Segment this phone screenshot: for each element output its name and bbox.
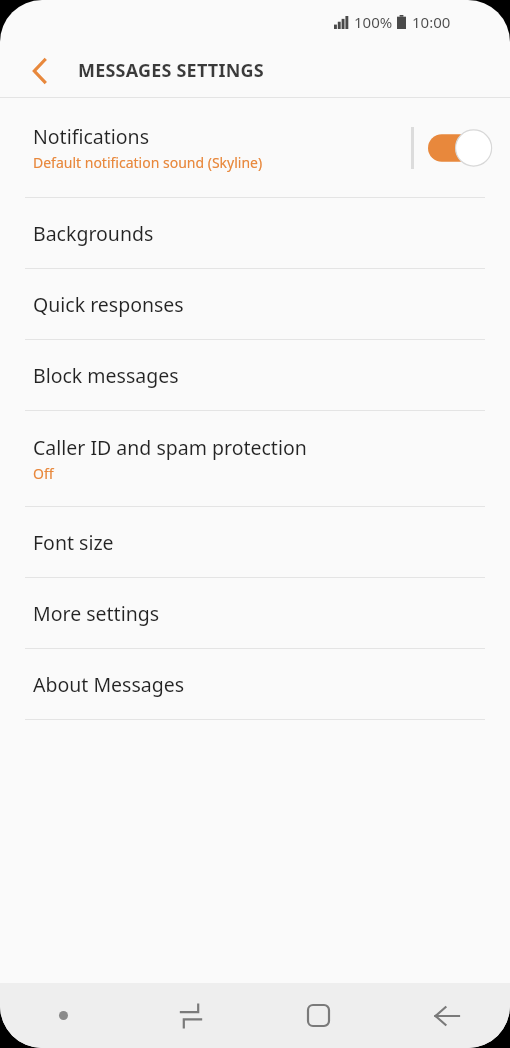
staticText: Caller ID and spam protection xyxy=(33,434,307,461)
staticText: Block messages xyxy=(33,362,179,389)
button[interactable]: Home xyxy=(254,983,382,1048)
staticText: Default notification sound (Skyline) xyxy=(33,153,263,172)
button[interactable]: Caller ID and spam protection xyxy=(0,411,510,506)
button[interactable]: Font size xyxy=(0,507,510,577)
button[interactable]: Quick responses xyxy=(0,269,510,339)
button[interactable]: Back xyxy=(18,50,60,92)
button[interactable]: Block messages xyxy=(0,340,510,410)
button[interactable]: About Messages xyxy=(0,649,510,719)
staticText: 100% xyxy=(354,12,393,32)
staticText: More settings xyxy=(33,600,160,627)
staticText: Quick responses xyxy=(33,291,184,318)
staticText: Font size xyxy=(33,529,114,556)
button[interactable]: Notifications xyxy=(0,98,510,197)
button[interactable]: Notifications toggle xyxy=(428,126,488,170)
staticText: Notifications xyxy=(33,123,149,150)
staticText: About Messages xyxy=(33,671,185,698)
staticText: Backgrounds xyxy=(33,220,154,247)
button[interactable]: More settings xyxy=(0,578,510,648)
button[interactable]: Back xyxy=(382,983,510,1048)
staticText: Off xyxy=(33,464,54,483)
button[interactable]: Recents xyxy=(127,983,254,1048)
button[interactable]: Assistant xyxy=(0,983,127,1048)
staticText: MESSAGES SETTINGS xyxy=(78,58,264,83)
staticText: 10:00 xyxy=(412,12,451,32)
button[interactable]: Backgrounds xyxy=(0,198,510,268)
